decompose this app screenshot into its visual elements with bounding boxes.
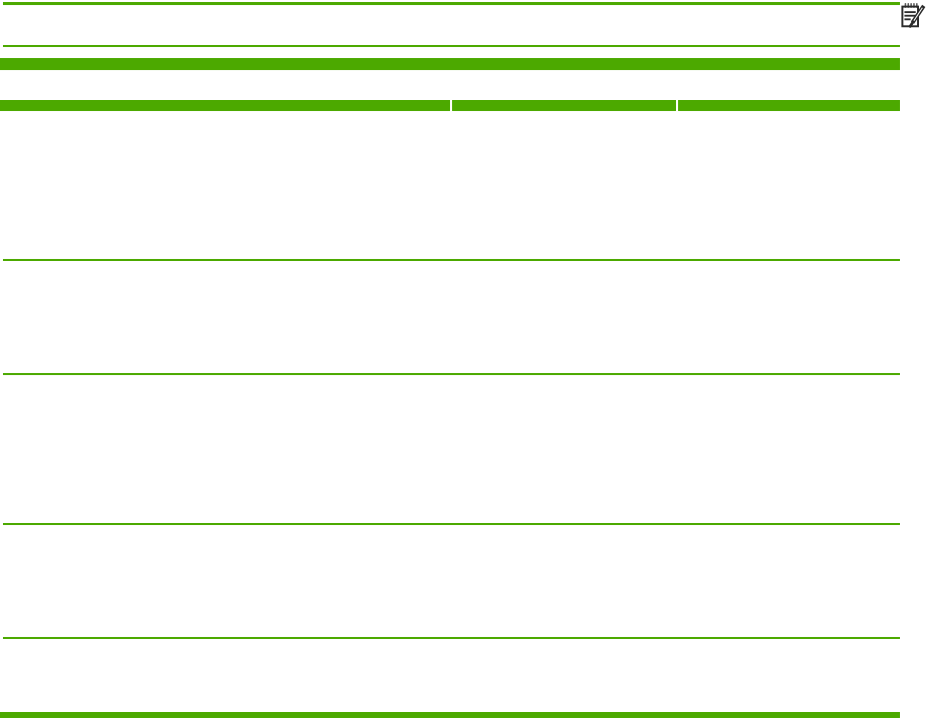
button[interactable]: Notes (901, 3, 924, 27)
